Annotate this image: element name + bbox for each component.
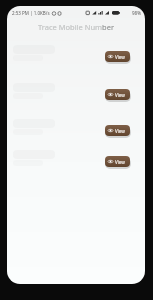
staticText: 2:53 PM | 1.0KB/s [12,10,50,16]
button[interactable]: View [105,89,130,100]
staticText: View [115,54,125,60]
staticText: View [115,92,125,98]
button[interactable]: View [105,125,130,136]
button[interactable]: View [105,51,130,62]
staticText: View [115,128,125,134]
staticText: 98% [132,10,141,16]
staticText: View [115,159,125,165]
button[interactable]: View [105,156,130,167]
staticText: Trace Mobile Number [7,22,145,32]
